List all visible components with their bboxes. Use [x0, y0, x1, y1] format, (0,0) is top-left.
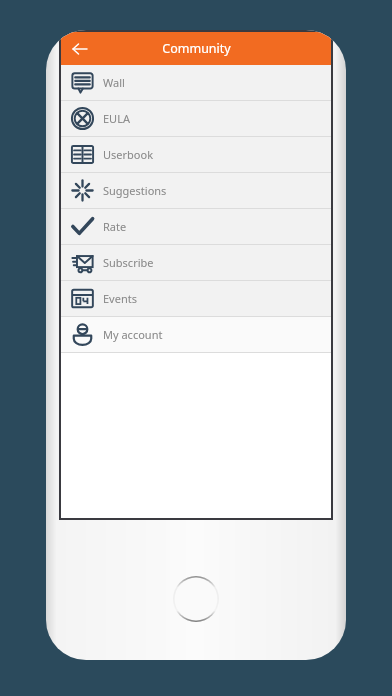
staticText: Wall — [103, 75, 125, 90]
button[interactable]: Back — [61, 32, 99, 65]
staticText: EULA — [103, 111, 130, 126]
button[interactable]: EULA — [61, 101, 331, 136]
staticText: Userbook — [103, 147, 154, 162]
staticText: Suggestions — [103, 183, 167, 198]
button[interactable]: Rate — [61, 209, 331, 244]
button[interactable]: My account — [61, 317, 331, 352]
staticText: Community — [162, 40, 231, 57]
button[interactable]: Events — [61, 281, 331, 316]
staticText: Subscribe — [103, 255, 154, 270]
button[interactable]: Subscribe — [61, 245, 331, 280]
button[interactable]: Userbook — [61, 137, 331, 172]
staticText: Rate — [103, 219, 127, 234]
button[interactable]: Wall — [61, 65, 331, 100]
staticText: Events — [103, 291, 137, 306]
button[interactable]: Suggestions — [61, 173, 331, 208]
staticText: My account — [103, 327, 163, 342]
